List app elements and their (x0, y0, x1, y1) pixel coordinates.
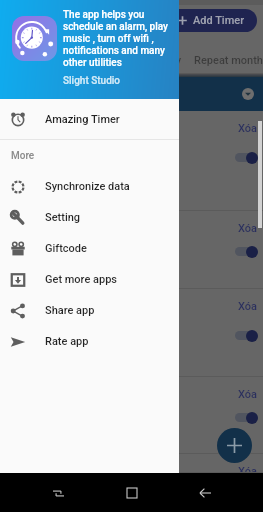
staticText: Get more apps (45, 273, 117, 286)
staticText: More (11, 150, 35, 162)
button[interactable]: Xóa (0, 377, 263, 454)
staticText: The app helps you schedule an alarm, pla… (63, 9, 175, 69)
staticText: Remind me to drink water (10, 239, 125, 251)
button[interactable]: Xóa (238, 465, 258, 473)
staticText: Repeat monthly (194, 54, 263, 67)
button[interactable]: Amazing Timer (0, 99, 179, 139)
button[interactable] (235, 151, 259, 164)
button[interactable]: Setting (0, 202, 179, 233)
button[interactable]: Synchronize data (0, 171, 179, 202)
button[interactable]: Back (190, 478, 220, 508)
button[interactable]: Xóa (0, 211, 263, 289)
button[interactable]: Add timer (217, 428, 252, 463)
staticText: Ring volume Normal (10, 329, 101, 341)
staticText: Repeat weekly (110, 54, 182, 67)
button[interactable]: Share app (0, 295, 179, 326)
button[interactable]: Xóa (238, 222, 258, 235)
button[interactable] (235, 411, 259, 424)
staticText: to wake you to (10, 151, 75, 163)
staticText: Synchronize data (45, 180, 130, 193)
staticText: Every day (daily) (10, 341, 84, 353)
button[interactable]: Xóa (0, 111, 263, 211)
staticText: Use the app to set an alarm (10, 139, 133, 151)
button[interactable]: Repeat weekly (104, 47, 188, 73)
staticText: Slight Studio (63, 75, 120, 87)
staticText: Setting (45, 211, 81, 224)
button[interactable]: Rate app (0, 326, 179, 357)
button[interactable]: Xóa (0, 454, 263, 473)
button[interactable]: Repeat monthly (188, 47, 263, 73)
button[interactable]: Xóa (238, 122, 258, 135)
button[interactable] (235, 245, 259, 258)
staticText: Rate app (45, 335, 89, 348)
staticText: Share app (45, 304, 95, 317)
staticText: Every day (daily) (10, 251, 84, 263)
button[interactable]: Get more apps (0, 264, 179, 295)
staticText: Giftcode (45, 242, 87, 255)
button[interactable]: Giftcode (0, 233, 179, 264)
button[interactable]: Home (117, 478, 147, 508)
button[interactable]: Xóa (0, 289, 263, 377)
button[interactable]: Add Timer (167, 9, 257, 32)
staticText: Add Timer (193, 14, 245, 27)
button[interactable]: Recents (43, 478, 73, 508)
staticText: Amazing Timer (45, 113, 120, 126)
staticText: Turn off wifi (Vibrate, Mute) (10, 317, 134, 329)
button[interactable]: Repeat daily (31, 47, 104, 73)
button[interactable] (235, 329, 259, 342)
staticText: Repeat daily (37, 54, 98, 67)
button[interactable]: Xóa (238, 300, 258, 313)
button[interactable]: Expand (242, 88, 254, 100)
button[interactable]: Xóa (238, 388, 258, 401)
